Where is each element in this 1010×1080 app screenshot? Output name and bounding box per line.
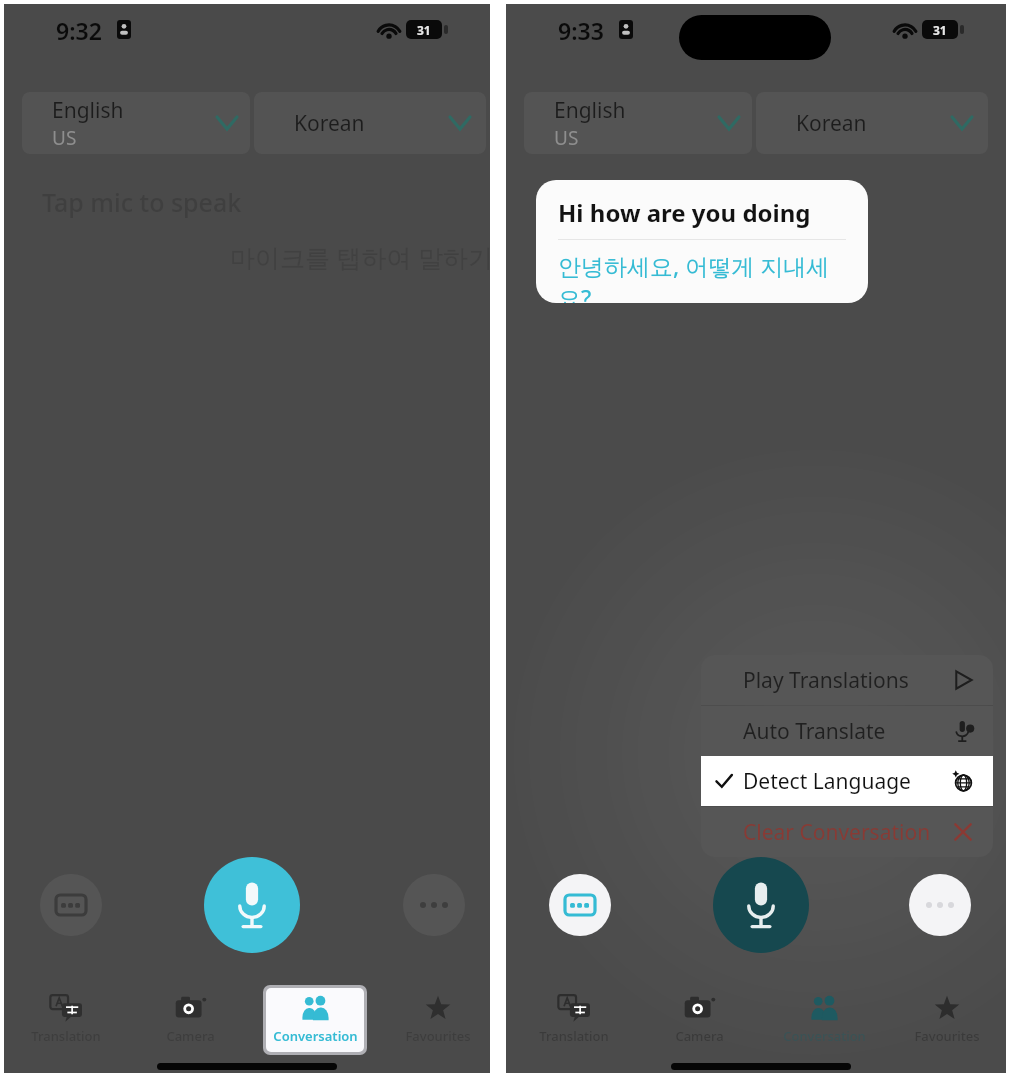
- button[interactable]: English: [22, 92, 250, 154]
- button[interactable]: English: [524, 92, 752, 154]
- staticText: 마이크를 탭하여 말하기: [230, 240, 494, 274]
- staticText: Korean: [294, 109, 365, 138]
- staticText: Translation: [539, 1027, 609, 1045]
- staticText: Play Translations: [743, 666, 951, 695]
- staticText: 안녕하세요, 어떻게 지내세요?: [558, 250, 846, 303]
- button[interactable]: More options: [909, 874, 971, 936]
- staticText: US: [554, 125, 579, 151]
- button[interactable]: Camera: [138, 988, 242, 1052]
- button[interactable]: Korean: [756, 92, 988, 154]
- staticText: Favourites: [405, 1027, 471, 1045]
- button[interactable]: Conversation: [772, 988, 876, 1052]
- button[interactable]: Keyboard: [40, 874, 102, 936]
- staticText: 9:32: [56, 15, 102, 46]
- staticText: Camera: [166, 1027, 215, 1045]
- button[interactable]: Korean: [254, 92, 486, 154]
- button[interactable]: Clear Conversation: [701, 807, 993, 857]
- button[interactable]: Play Translations: [701, 655, 993, 705]
- staticText: English: [554, 96, 626, 125]
- button[interactable]: Microphone: [713, 857, 809, 953]
- button[interactable]: Camera: [647, 988, 751, 1052]
- button[interactable]: Translation: [14, 988, 118, 1052]
- staticText: 9:33: [558, 15, 604, 46]
- staticText: US: [52, 125, 77, 151]
- button[interactable]: Hi how are you doing: [536, 180, 868, 303]
- staticText: Auto Translate: [743, 717, 951, 746]
- staticText: Clear Conversation: [743, 818, 951, 847]
- staticText: Translation: [31, 1027, 101, 1045]
- button[interactable]: Microphone: [204, 857, 300, 953]
- staticText: Tap mic to speak: [42, 185, 242, 219]
- staticText: Conversation: [273, 1027, 358, 1045]
- button[interactable]: Conversation: [263, 988, 367, 1052]
- staticText: Hi how are you doing: [558, 196, 811, 229]
- staticText: Conversation: [783, 1027, 866, 1045]
- staticText: Camera: [675, 1027, 724, 1045]
- staticText: Favourites: [914, 1027, 980, 1045]
- staticText: Korean: [796, 109, 867, 138]
- staticText: Detect Language: [743, 767, 951, 796]
- button[interactable]: Favourites: [895, 988, 999, 1052]
- button[interactable]: Favourites: [386, 988, 490, 1052]
- staticText: 31: [417, 22, 431, 38]
- button[interactable]: Keyboard: [549, 874, 611, 936]
- button[interactable]: More options: [403, 874, 465, 936]
- button[interactable]: Auto Translate: [701, 706, 993, 756]
- button[interactable]: Detect Language: [701, 756, 993, 806]
- staticText: 31: [933, 22, 947, 38]
- button[interactable]: Translation: [522, 988, 626, 1052]
- staticText: English: [52, 96, 124, 125]
